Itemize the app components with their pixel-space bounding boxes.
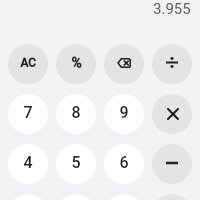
button[interactable]: 8 [56,94,96,134]
button[interactable]: Multiply [152,94,192,134]
button[interactable]: 9 [104,94,144,134]
staticText: 7 [23,103,33,122]
button[interactable]: 4 [8,144,48,184]
staticText: AC [20,56,36,70]
button[interactable]: AC [8,44,48,84]
staticText: 5 [71,153,81,172]
button[interactable]: Plus [152,194,192,200]
button[interactable]: Backspace [104,44,144,84]
button[interactable]: 3 [104,194,144,200]
button[interactable]: 2 [56,194,96,200]
staticText: 3.955 [153,0,191,17]
staticText: % [71,55,82,71]
button[interactable]: 7 [8,94,48,134]
staticText: 9 [119,103,129,122]
button[interactable]: 6 [104,144,144,184]
button[interactable]: 5 [56,144,96,184]
button[interactable]: 1 [8,194,48,200]
button[interactable]: Minus [152,144,192,184]
staticText: 8 [71,103,81,122]
button[interactable]: % [56,44,96,84]
staticText: 6 [119,153,129,172]
staticText: 4 [23,153,33,172]
button[interactable]: Divide [152,44,192,84]
